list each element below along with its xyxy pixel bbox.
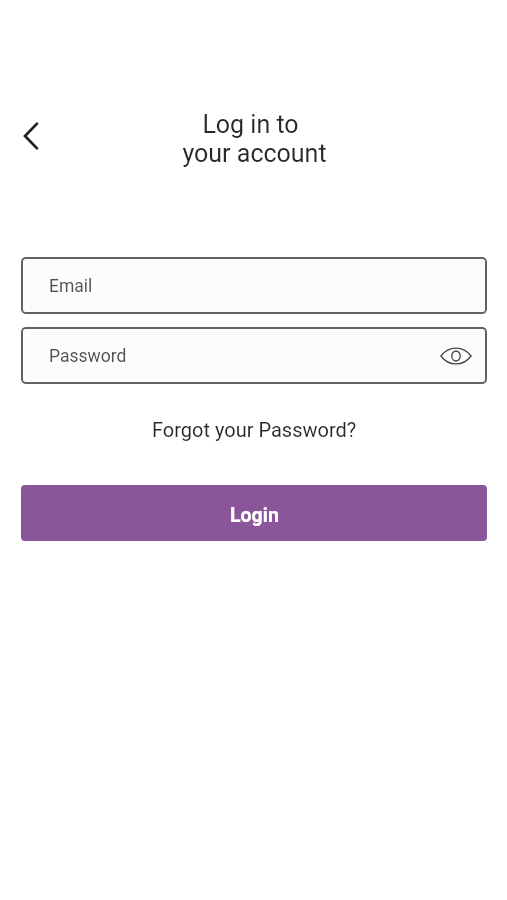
button[interactable]: Forgot your Password? (142, 413, 367, 446)
staticText: Email (49, 276, 93, 297)
button[interactable]: Email (21, 257, 487, 314)
button[interactable]: Login (21, 485, 487, 541)
button[interactable]: Back (5, 110, 57, 162)
button[interactable]: Show password (438, 338, 474, 374)
staticText: Log in to (0, 110, 504, 139)
staticText: Login (230, 504, 279, 527)
staticText: Password (49, 346, 127, 367)
button[interactable]: Password (21, 327, 487, 384)
staticText: your account (1, 139, 507, 168)
